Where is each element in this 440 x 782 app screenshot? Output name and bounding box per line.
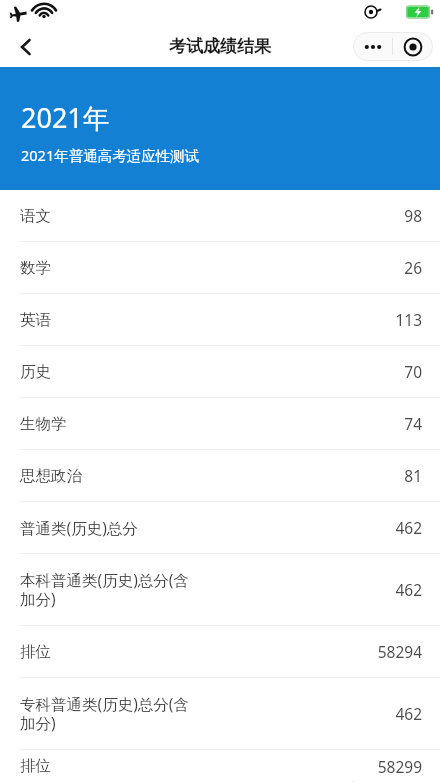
staticText: 70 bbox=[404, 361, 422, 382]
staticText: 数学 bbox=[20, 258, 404, 278]
staticText: 462 bbox=[395, 703, 422, 724]
staticText: 生物学 bbox=[20, 414, 404, 434]
staticText: 98 bbox=[404, 205, 422, 226]
button[interactable]: 本科普通类(历史)总分(含 加分) bbox=[0, 554, 440, 625]
staticText: 语文 bbox=[20, 206, 404, 226]
button[interactable]: 普通类(历史)总分 bbox=[0, 502, 440, 553]
button[interactable]: Close bbox=[393, 32, 433, 61]
button[interactable]: More bbox=[353, 32, 392, 61]
staticText: 历史 bbox=[20, 362, 404, 382]
staticText: 113 bbox=[395, 309, 422, 330]
staticText: 58299 bbox=[377, 756, 422, 777]
staticText: 81 bbox=[404, 465, 422, 486]
button[interactable]: 思想政治 bbox=[0, 450, 440, 501]
button[interactable]: 生物学 bbox=[0, 398, 440, 449]
staticText: 74 bbox=[404, 413, 422, 434]
staticText: 26 bbox=[404, 257, 422, 278]
staticText: 本科普通类(历史)总分(含 加分) bbox=[20, 569, 395, 610]
staticText: 专科普通类(历史)总分(含 加分) bbox=[20, 693, 395, 734]
button[interactable]: 排位 bbox=[0, 626, 440, 677]
button[interactable]: Back bbox=[4, 26, 48, 67]
staticText: 58294 bbox=[377, 641, 422, 662]
staticText: 英语 bbox=[20, 310, 395, 330]
button[interactable]: 语文 bbox=[0, 190, 440, 241]
staticText: 考试成绩结果 bbox=[169, 36, 271, 57]
staticText: 排位 bbox=[20, 642, 377, 662]
button[interactable]: 英语 bbox=[0, 294, 440, 345]
staticText: 普通类(历史)总分 bbox=[20, 517, 395, 538]
button[interactable]: 数学 bbox=[0, 242, 440, 293]
staticText: 462 bbox=[395, 579, 422, 600]
staticText: 2021年普通高考适应性测试 bbox=[21, 145, 200, 165]
button[interactable]: 历史 bbox=[0, 346, 440, 397]
staticText: 2021年 bbox=[21, 99, 110, 136]
button[interactable]: 排位 bbox=[0, 750, 440, 782]
staticText: 排位 bbox=[20, 756, 377, 776]
staticText: 462 bbox=[395, 517, 422, 538]
button[interactable]: 专科普通类(历史)总分(含 加分) bbox=[0, 678, 440, 749]
staticText: 思想政治 bbox=[20, 466, 404, 486]
